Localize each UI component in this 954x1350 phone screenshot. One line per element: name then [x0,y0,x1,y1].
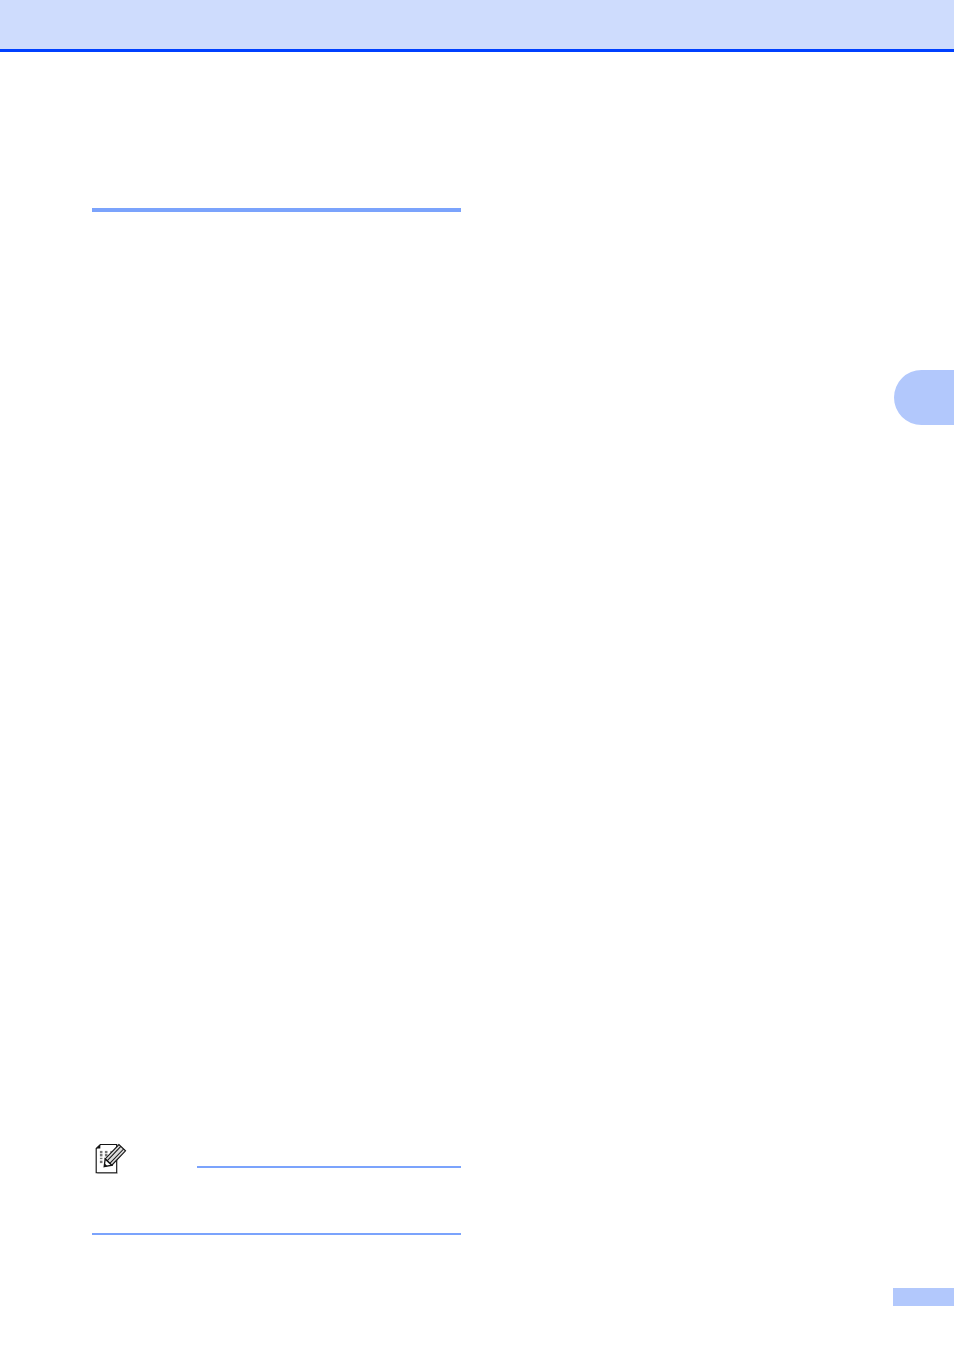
button[interactable]: Chapter tab [894,370,954,425]
button[interactable]: Note [94,1142,128,1176]
